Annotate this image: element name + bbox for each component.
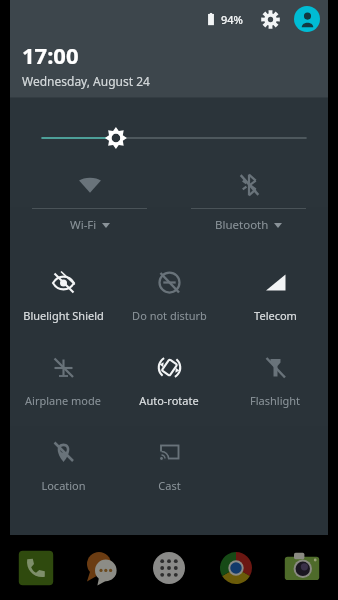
staticText: 94% bbox=[221, 12, 243, 27]
staticText: Telecom bbox=[254, 308, 297, 323]
button[interactable]: Settings bbox=[257, 6, 283, 32]
staticText: Wi-Fi bbox=[70, 217, 97, 233]
staticText: Airplane mode bbox=[25, 393, 101, 408]
button[interactable]: Auto-rotate bbox=[116, 341, 222, 426]
staticText: Flashlight bbox=[250, 393, 300, 408]
button[interactable]: Apps bbox=[145, 544, 193, 592]
staticText: Cast bbox=[158, 478, 181, 493]
button[interactable]: Do not disturb bbox=[116, 256, 222, 341]
button[interactable]: Camera bbox=[278, 544, 326, 592]
button[interactable]: Bluelight Shield bbox=[10, 256, 116, 341]
button[interactable]: Chrome bbox=[212, 544, 260, 592]
button[interactable]: Telecom bbox=[222, 256, 328, 341]
button[interactable]: Wi-Fi bbox=[10, 162, 169, 240]
button[interactable]: Airplane mode bbox=[10, 341, 116, 426]
staticText: Auto-rotate bbox=[139, 393, 199, 408]
button[interactable]: Flashlight bbox=[222, 341, 328, 426]
staticText: Location bbox=[41, 478, 86, 493]
button[interactable]: Phone bbox=[12, 544, 60, 592]
staticText: Do not disturb bbox=[132, 308, 207, 323]
staticText: Wednesday, August 24 bbox=[22, 73, 150, 89]
button[interactable]: Location bbox=[10, 426, 116, 511]
staticText: Bluetooth bbox=[215, 217, 269, 233]
button[interactable]: Messages bbox=[79, 544, 127, 592]
button[interactable]: Brightness bbox=[10, 98, 328, 162]
button[interactable]: User profile bbox=[294, 6, 320, 32]
button[interactable]: Cast bbox=[116, 426, 222, 511]
staticText: Bluelight Shield bbox=[23, 308, 104, 323]
button[interactable]: 17:00 bbox=[22, 40, 150, 89]
staticText: 17:00 bbox=[22, 40, 79, 70]
button[interactable]: Bluetooth bbox=[169, 162, 328, 240]
